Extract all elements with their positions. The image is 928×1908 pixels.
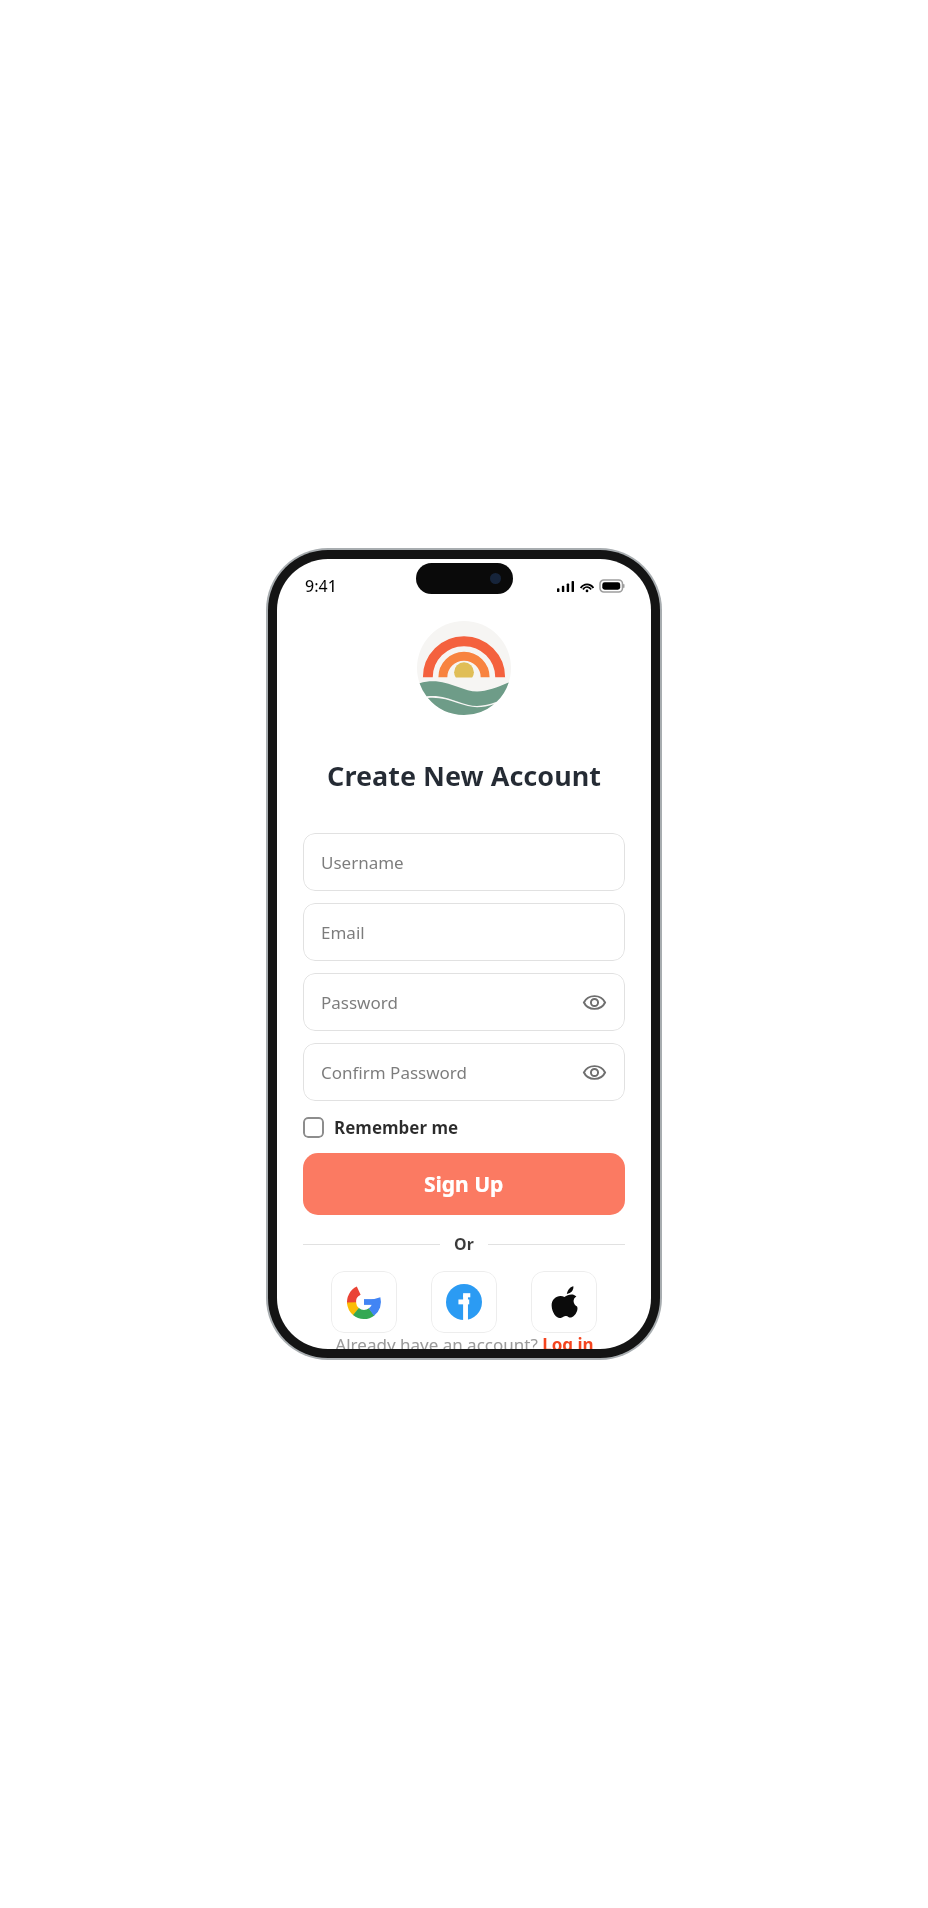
staticText: Or <box>454 1233 474 1255</box>
button[interactable]: Toggle password visibility <box>577 1055 611 1089</box>
button[interactable]: Confirm Password <box>303 1043 625 1101</box>
button[interactable]: Password <box>303 973 625 1031</box>
staticText: Confirm Password <box>321 1061 467 1084</box>
button[interactable]: Already have an account? Log in <box>277 1333 651 1349</box>
staticText: Already have an account? Log in <box>335 1333 594 1349</box>
button[interactable]: Sign up with Facebook <box>431 1271 497 1333</box>
staticText: 9:41 <box>305 575 337 597</box>
staticText: Email <box>321 921 365 944</box>
button[interactable]: Sign up with Apple <box>531 1271 597 1333</box>
button[interactable]: Sign Up <box>303 1153 625 1215</box>
button[interactable]: Remember me <box>303 1116 459 1139</box>
staticText: Password <box>321 991 398 1014</box>
staticText: Sign Up <box>424 1170 504 1199</box>
button[interactable]: Sign up with Google <box>331 1271 397 1333</box>
button[interactable]: Username <box>303 833 625 891</box>
staticText: Remember me <box>334 1116 459 1139</box>
staticText: Username <box>321 851 404 874</box>
staticText: Create New Account <box>277 757 651 794</box>
button[interactable]: Toggle password visibility <box>577 985 611 1019</box>
button[interactable]: Email <box>303 903 625 961</box>
